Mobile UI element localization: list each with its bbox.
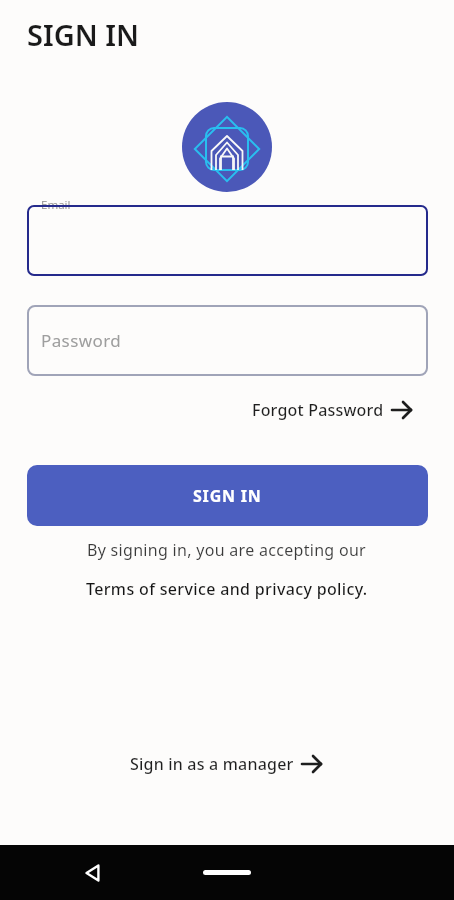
button[interactable]: SIGN IN bbox=[27, 465, 428, 526]
button[interactable]: Sign in as a manager bbox=[130, 752, 324, 776]
button[interactable]: Terms of service and privacy policy. bbox=[86, 578, 368, 600]
staticText: Sign in as a manager bbox=[130, 753, 294, 775]
staticText: Password bbox=[41, 329, 122, 352]
button[interactable]: Email bbox=[27, 205, 428, 276]
button[interactable]: Password bbox=[27, 305, 428, 376]
staticText: SIGN IN bbox=[193, 485, 262, 507]
staticText: Email bbox=[41, 197, 71, 213]
staticText: By signing in, you are accepting our bbox=[87, 539, 367, 561]
button[interactable] bbox=[84, 864, 102, 882]
staticText: Forgot Password bbox=[252, 399, 384, 421]
button[interactable]: Forgot Password bbox=[252, 398, 414, 422]
button[interactable] bbox=[203, 870, 251, 875]
staticText: SIGN IN bbox=[27, 15, 139, 54]
